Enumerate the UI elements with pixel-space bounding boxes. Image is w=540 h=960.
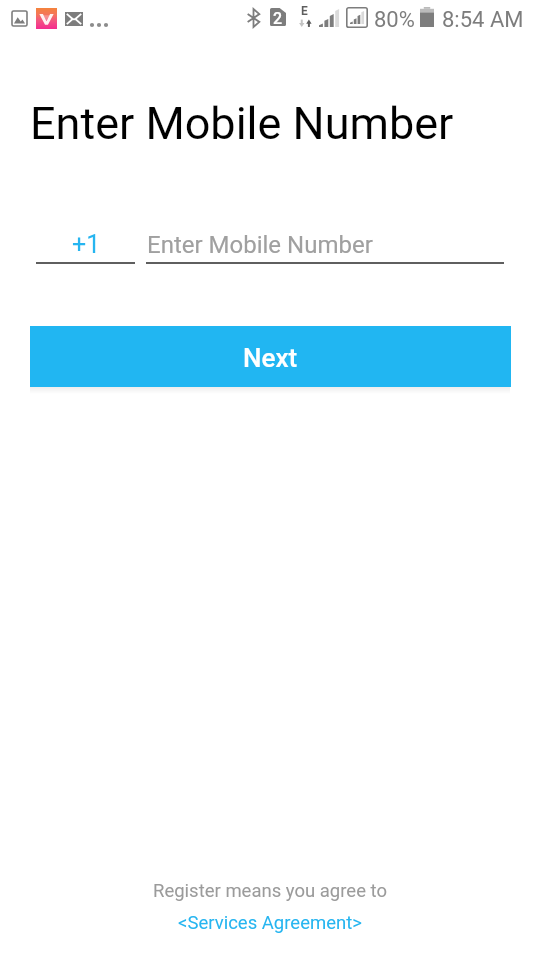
button[interactable]: <Services Agreement>: [178, 912, 362, 934]
staticText: 2: [273, 9, 283, 27]
staticText: 80%: [374, 7, 415, 33]
staticText: <Services Agreement>: [178, 912, 362, 934]
staticText: E: [301, 4, 308, 18]
other: Message: [65, 12, 83, 26]
staticText: Enter Mobile Number: [30, 97, 454, 150]
staticText: 8:54 AM: [442, 7, 524, 33]
button[interactable]: +1: [36, 222, 135, 264]
staticText: +1: [72, 230, 101, 259]
staticText: Register means you agree to: [153, 880, 387, 902]
button[interactable]: Enter Mobile Number: [146, 222, 504, 264]
other: App notification: [36, 8, 57, 29]
other: Screenshot: [12, 11, 27, 26]
staticText: Enter Mobile Number: [147, 231, 373, 259]
button[interactable]: Next: [30, 326, 511, 387]
staticText: Next: [243, 343, 298, 373]
